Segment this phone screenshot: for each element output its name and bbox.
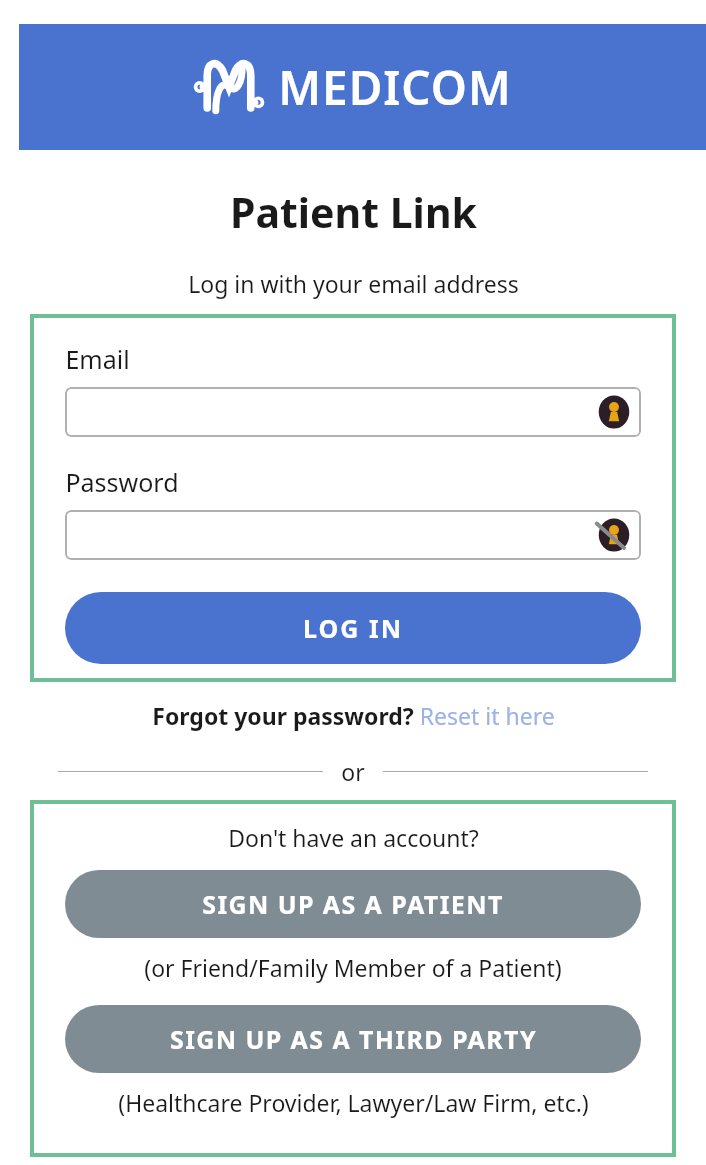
staticText: SIGN UP AS A PATIENT — [202, 887, 504, 921]
other: Password saved — [596, 517, 632, 553]
staticText: LOG IN — [303, 611, 403, 645]
staticText: SIGN UP AS A THIRD PARTY — [170, 1022, 537, 1056]
other: Saved login — [596, 394, 632, 430]
button[interactable]: SIGN UP AS A THIRD PARTY — [65, 1005, 641, 1073]
staticText: MEDICOM — [278, 56, 512, 119]
staticText: (Healthcare Provider, Lawyer/Law Firm, e… — [118, 1087, 589, 1118]
staticText: (or Friend/Family Member of a Patient) — [144, 952, 562, 983]
staticText: Don't have an account? — [228, 822, 479, 853]
button[interactable]: Forgot your password? Reset it here — [0, 700, 706, 731]
staticText: Forgot your password? Reset it here — [152, 700, 555, 731]
button[interactable]: SIGN UP AS A PATIENT — [65, 870, 641, 938]
button[interactable]: Saved login — [65, 387, 641, 437]
staticText: Password — [65, 465, 179, 499]
button[interactable]: LOG IN — [65, 592, 641, 664]
staticText: Log in with your email address — [188, 268, 519, 299]
staticText: or — [341, 756, 365, 787]
staticText: Email — [65, 342, 130, 376]
staticText: Patient Link — [230, 184, 477, 240]
button[interactable]: Password saved — [65, 510, 641, 560]
